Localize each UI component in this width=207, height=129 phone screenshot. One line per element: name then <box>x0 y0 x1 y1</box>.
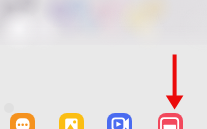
button[interactable]: Go live <box>158 113 183 129</box>
button[interactable]: Chat <box>10 113 35 129</box>
button[interactable]: Photos <box>59 113 84 129</box>
button[interactable]: Video call <box>107 113 132 129</box>
